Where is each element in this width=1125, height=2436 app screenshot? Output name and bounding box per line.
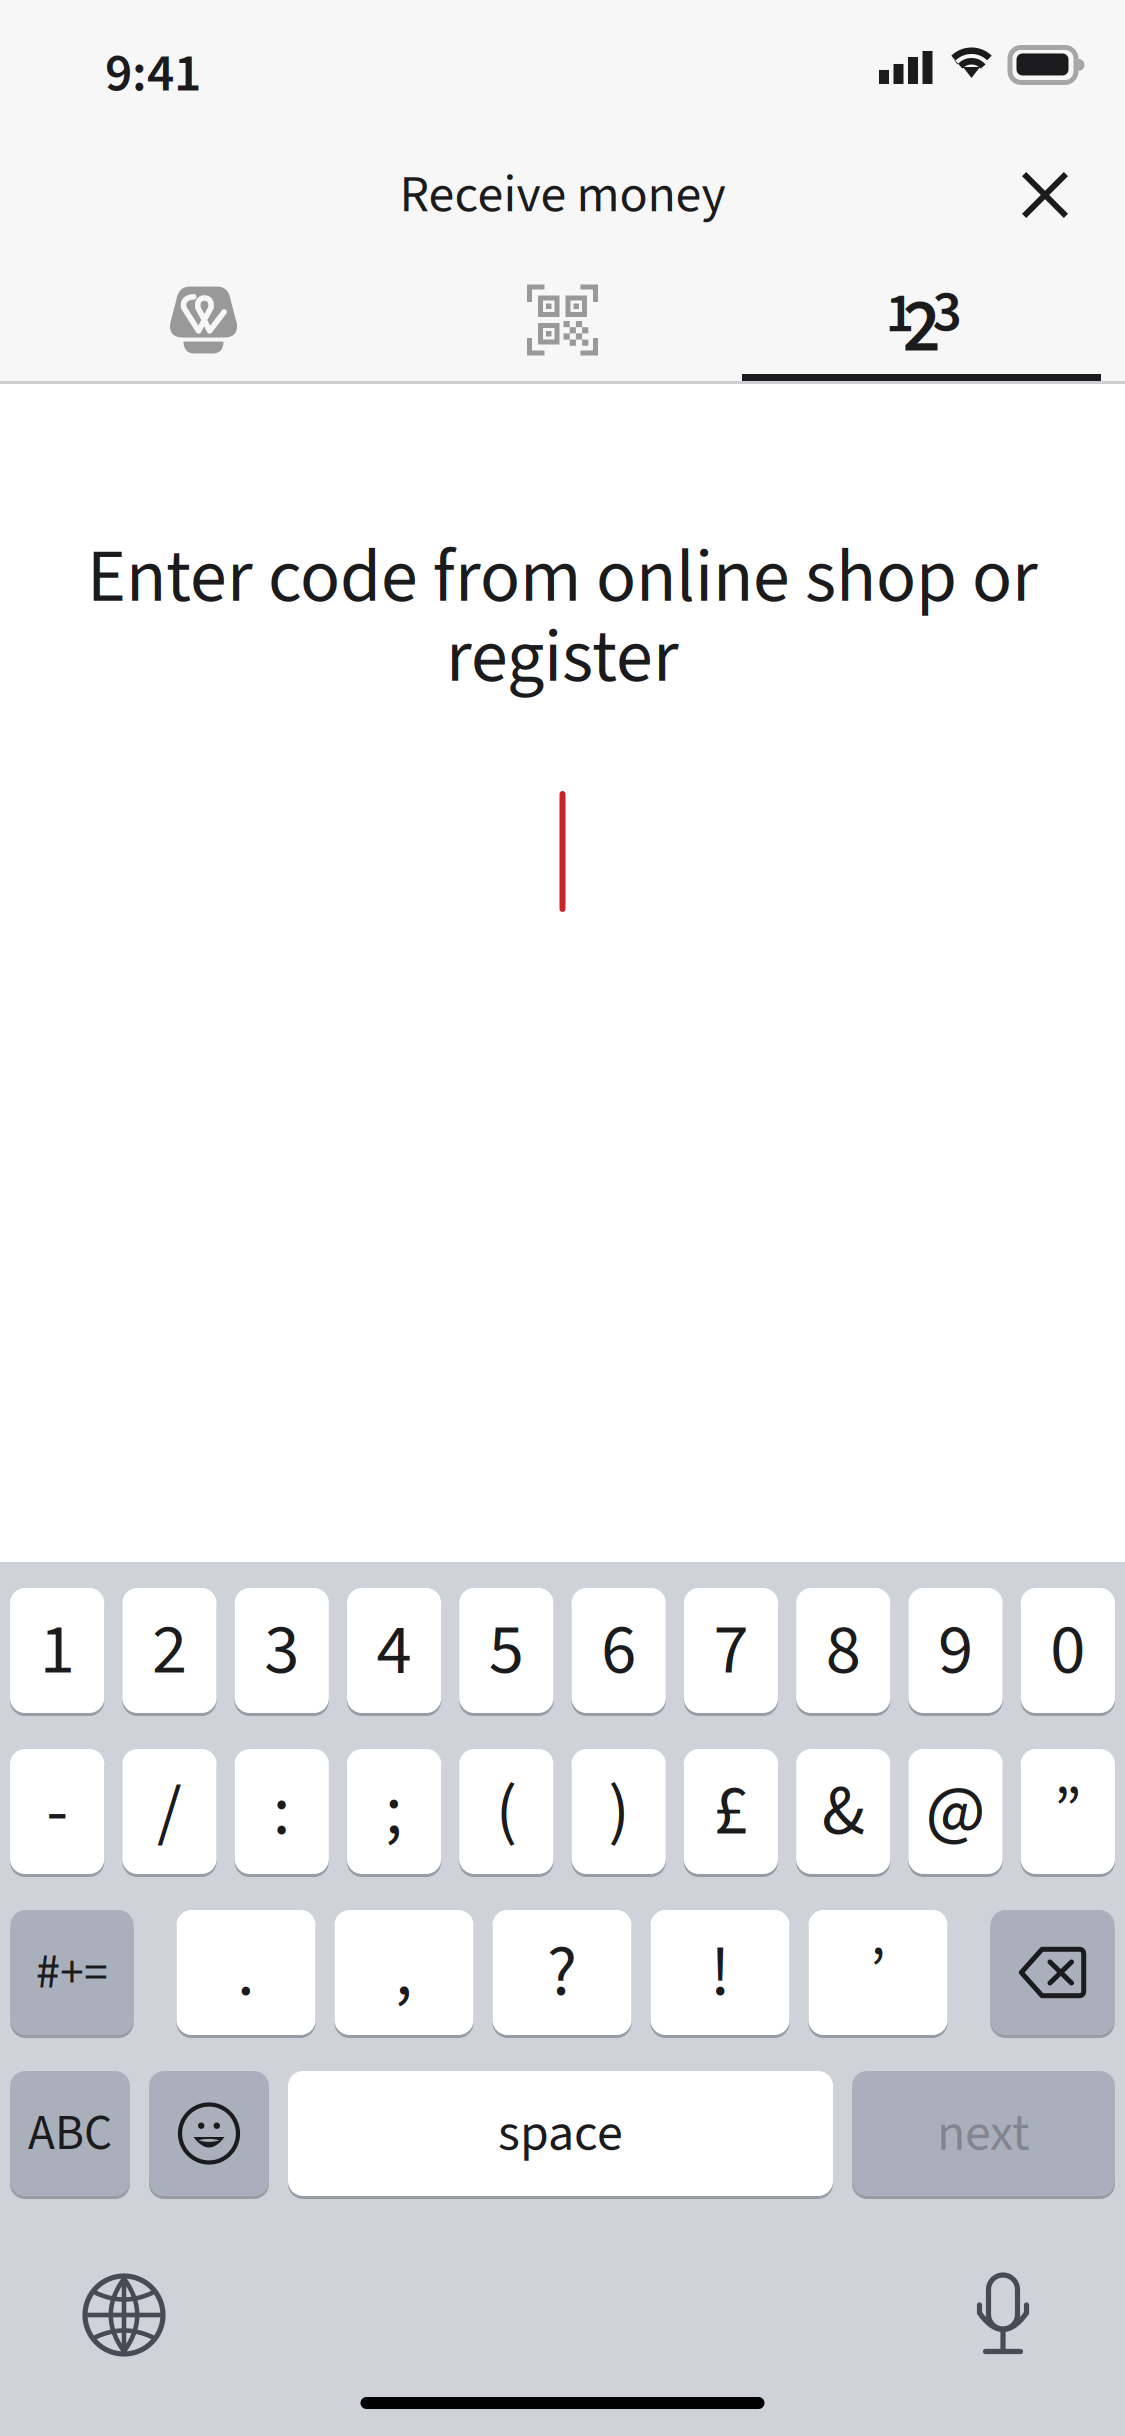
staticText: 1 xyxy=(40,1600,75,1701)
staticText: 9:41 xyxy=(105,36,201,112)
button[interactable]: ” xyxy=(1021,1749,1115,1874)
button[interactable]: / xyxy=(122,1749,217,1874)
staticText: 3 xyxy=(932,272,961,354)
staticText: 5 xyxy=(489,1600,524,1701)
staticText: ( xyxy=(496,1761,517,1862)
button[interactable]: 3 xyxy=(235,1588,329,1713)
button[interactable]: . xyxy=(176,1910,315,2035)
staticText: - xyxy=(46,1761,68,1862)
button[interactable]: ’ xyxy=(808,1910,947,2035)
button[interactable]: : xyxy=(235,1749,329,1874)
staticText: 2 xyxy=(902,274,940,380)
button[interactable]: - xyxy=(10,1749,104,1874)
button[interactable]: 5 xyxy=(459,1588,553,1713)
staticText: 9 xyxy=(938,1600,973,1701)
staticText: space xyxy=(498,2096,623,2170)
staticText: 6 xyxy=(601,1600,636,1701)
button[interactable]: 8 xyxy=(796,1588,890,1713)
button[interactable]: 9 xyxy=(908,1588,1003,1713)
staticText: #+= xyxy=(36,1938,108,2007)
staticText: / xyxy=(157,1761,182,1862)
button[interactable]: #+= xyxy=(10,1910,133,2035)
button[interactable]: & xyxy=(796,1749,890,1874)
button[interactable]: , xyxy=(334,1910,473,2035)
button[interactable]: @ xyxy=(908,1749,1003,1874)
staticText: ? xyxy=(547,1922,577,2023)
staticText: 1 xyxy=(885,274,914,354)
staticText: @ xyxy=(926,1761,986,1862)
staticText: 7 xyxy=(713,1600,748,1701)
staticText: & xyxy=(822,1761,865,1862)
button[interactable]: 7 xyxy=(684,1588,778,1713)
staticText: 0 xyxy=(1050,1600,1085,1701)
button[interactable]: 2 xyxy=(122,1588,217,1713)
button[interactable]: next xyxy=(852,2071,1115,2196)
staticText: Receive money xyxy=(399,158,725,232)
staticText: : xyxy=(273,1761,291,1862)
button[interactable]: Dictate xyxy=(945,2256,1061,2375)
staticText: . xyxy=(237,1922,255,2023)
staticText: ABC xyxy=(28,2098,112,2169)
staticText: £ xyxy=(713,1761,748,1862)
staticText: ) xyxy=(608,1761,629,1862)
button[interactable]: ( xyxy=(459,1749,553,1874)
staticText: ’ xyxy=(870,1927,886,2018)
button[interactable]: ) xyxy=(571,1749,666,1874)
button[interactable]: ; xyxy=(347,1749,441,1874)
button[interactable]: 1 xyxy=(10,1588,104,1713)
button[interactable]: space xyxy=(288,2071,833,2196)
button[interactable]: Change keyboard xyxy=(55,2256,193,2375)
button[interactable]: £ xyxy=(684,1749,778,1874)
staticText: next xyxy=(937,2096,1030,2170)
staticText: ” xyxy=(1054,1766,1081,1857)
staticText: Enter code from online shop or xyxy=(87,525,1038,630)
staticText: register xyxy=(446,605,679,710)
button[interactable]: Close xyxy=(990,140,1100,250)
button[interactable]: 6 xyxy=(571,1588,666,1713)
button[interactable]: ! xyxy=(650,1910,789,2035)
staticText: 2 xyxy=(152,1600,187,1701)
staticText: ! xyxy=(710,1922,730,2023)
button[interactable]: Wallet xyxy=(24,258,383,381)
button[interactable]: ? xyxy=(492,1910,631,2035)
button[interactable]: 0 xyxy=(1021,1588,1115,1713)
button[interactable]: Emoji xyxy=(149,2071,269,2196)
staticText: 8 xyxy=(826,1600,861,1701)
button[interactable]: Enter code xyxy=(742,258,1101,381)
staticText: , xyxy=(395,1922,413,2023)
staticText: ; xyxy=(385,1761,403,1862)
button[interactable]: Delete xyxy=(990,1910,1114,2035)
button[interactable]: Scan QR code xyxy=(383,258,742,381)
staticText: 4 xyxy=(377,1600,412,1701)
button[interactable]: ABC xyxy=(10,2071,130,2196)
staticText: 3 xyxy=(264,1600,299,1701)
button[interactable]: 4 xyxy=(347,1588,441,1713)
